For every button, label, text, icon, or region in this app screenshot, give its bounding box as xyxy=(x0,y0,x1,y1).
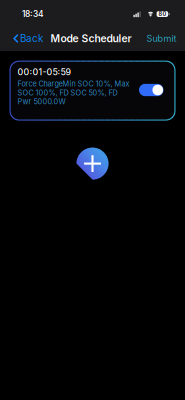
button[interactable]: 00:01-05:59 xyxy=(9,61,175,121)
staticText: Back xyxy=(20,32,43,44)
staticText: 80 xyxy=(158,11,166,17)
button[interactable]: Add schedule xyxy=(76,148,108,180)
staticText: 18:34 xyxy=(22,9,44,19)
button[interactable]: Submit xyxy=(139,27,185,49)
staticText: Mode Scheduler xyxy=(50,32,131,45)
staticText: 00:01-05:59 xyxy=(17,67,71,77)
staticText: Force ChargeMin SOC 10%, Max SOC 100%, F… xyxy=(17,79,129,106)
button[interactable]: Enable schedule xyxy=(139,84,163,96)
staticText: Submit xyxy=(146,33,176,44)
button[interactable]: Back xyxy=(0,27,50,49)
